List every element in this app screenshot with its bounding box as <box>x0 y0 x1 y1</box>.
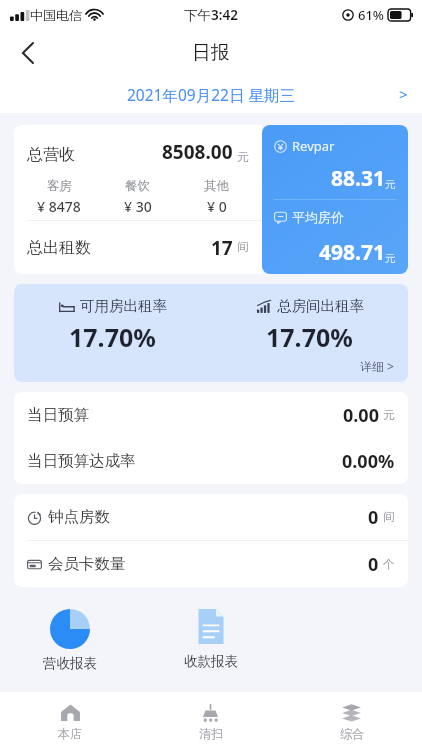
button[interactable]: 当日预算 <box>14 392 408 438</box>
button[interactable]: 综合 <box>281 692 422 750</box>
staticText: 总营收 <box>27 145 75 165</box>
staticText: 2021年09月22日 星期三 <box>127 84 295 105</box>
staticText: 间 <box>237 240 249 254</box>
staticText: 个 <box>383 557 395 571</box>
staticText: 元 <box>383 408 395 422</box>
button[interactable]: 营收报表 <box>0 599 140 672</box>
staticText: 客房 <box>47 178 72 194</box>
button[interactable]: 本店 <box>0 692 140 750</box>
staticText: 总出租数 <box>27 238 91 258</box>
staticText: 下午3:42 <box>184 6 238 24</box>
staticText: 平均房价 <box>292 209 344 225</box>
staticText: 0 <box>368 552 379 577</box>
button[interactable]: 收款报表 <box>140 599 281 670</box>
button[interactable]: 会员卡数量 <box>14 541 408 587</box>
staticText: 详细 > <box>360 358 394 374</box>
staticText: 元 <box>237 150 249 164</box>
staticText: 当日预算 <box>27 405 89 425</box>
staticText: 当日预算达成率 <box>27 451 136 471</box>
button[interactable]: 钟点房数 <box>14 494 408 540</box>
button[interactable]: 清扫 <box>140 692 281 750</box>
staticText: 清扫 <box>199 726 223 741</box>
staticText: 中国电信 <box>30 7 82 23</box>
staticText: 0 <box>368 505 379 530</box>
staticText: 元 <box>385 178 396 191</box>
staticText: 17.70% <box>266 320 353 354</box>
button[interactable]: 当日预算达成率 <box>14 438 408 484</box>
staticText: 0.00% <box>342 449 395 474</box>
button[interactable]: 2021年09月22日 星期三 <box>0 75 422 113</box>
staticText: 日报 <box>192 41 230 65</box>
staticText: 营收报表 <box>43 655 97 672</box>
staticText: 会员卡数量 <box>48 554 126 574</box>
staticText: 餐饮 <box>125 178 150 194</box>
staticText: 其他 <box>204 178 229 194</box>
staticText: 间 <box>383 510 395 524</box>
staticText: 0.00 <box>343 403 379 428</box>
staticText: ¥ 8478 <box>37 197 81 216</box>
staticText: 61% <box>358 6 384 24</box>
staticText: 可用房出租率 <box>80 297 167 315</box>
staticText: ¥ 30 <box>124 197 152 216</box>
staticText: 综合 <box>340 726 364 741</box>
staticText: 元 <box>385 252 396 265</box>
staticText: > <box>399 84 408 104</box>
staticText: 总房间出租率 <box>277 297 364 315</box>
button[interactable]: Back <box>6 32 48 74</box>
staticText: ¥ 0 <box>207 197 227 216</box>
staticText: 17 <box>211 235 233 261</box>
staticText: 收款报表 <box>184 653 238 670</box>
button[interactable]: Revpar <box>262 125 408 274</box>
staticText: 本店 <box>58 726 82 741</box>
staticText: 498.71 <box>319 238 385 267</box>
button[interactable]: 可用房出租率 <box>14 284 408 382</box>
staticText: Revpar <box>292 137 335 155</box>
staticText: 88.31 <box>331 164 385 193</box>
staticText: 17.70% <box>69 320 156 354</box>
staticText: 钟点房数 <box>48 507 110 527</box>
staticText: 8508.00 <box>162 139 233 165</box>
